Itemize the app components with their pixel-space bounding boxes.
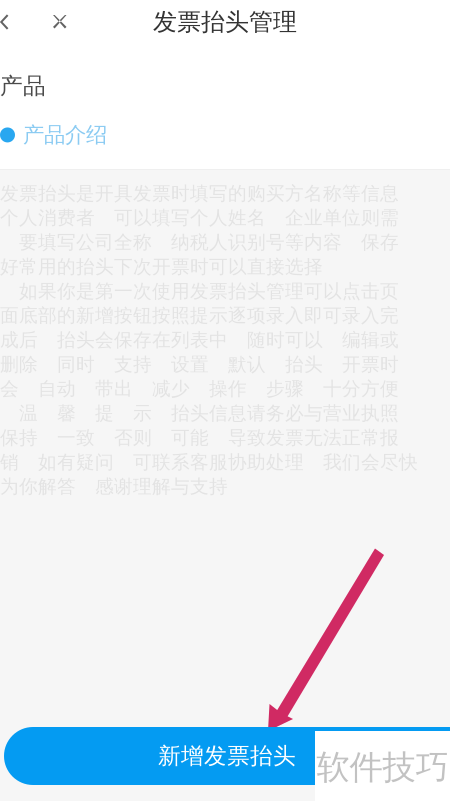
- staticText: 面底部的新增按钮按照提示逐项录入即可录入完: [0, 304, 399, 327]
- staticText: 为你解答 感谢理解与支持: [0, 475, 228, 498]
- button[interactable]: 关闭: [8, 0, 112, 44]
- staticText: 发票抬头是开具发票时填写的购买方名称等信息: [0, 182, 399, 205]
- staticText: 个人消费者 可以填写个人姓名 企业单位则需: [0, 206, 399, 229]
- staticText: 好常用的抬头下次开票时可以直接选择: [0, 255, 323, 278]
- staticText: 销 如有疑问 可联系客服协助处理 我们会尽快: [0, 451, 418, 474]
- staticText: 如果你是第一次使用发票抬头管理可以点击页: [0, 280, 399, 303]
- staticText: 发票抬头管理: [153, 7, 297, 37]
- button[interactable]: 新增发票抬头: [4, 727, 450, 785]
- button[interactable]: 返回: [0, 0, 8, 44]
- staticText: 成后 抬头会保存在列表中 随时可以 编辑或: [0, 329, 399, 351]
- staticText: 删除 同时 支持 设置 默认 抬头 开票时: [0, 353, 399, 376]
- staticText: 产品介绍: [23, 122, 107, 148]
- staticText: 保持 一致 否则 可能 导致发票无法正常报: [0, 426, 399, 449]
- staticText: 会 自动 带出 减少 操作 步骤 十分方便: [0, 377, 399, 400]
- staticText: 新增发票抬头: [158, 742, 296, 770]
- staticText: 软件技巧: [316, 747, 448, 788]
- staticText: 温 馨 提 示 抬头信息请务必与营业执照: [0, 402, 399, 425]
- staticText: 要填写公司全称 纳税人识别号等内容 保存: [0, 231, 399, 254]
- staticText: 产品: [0, 72, 46, 100]
